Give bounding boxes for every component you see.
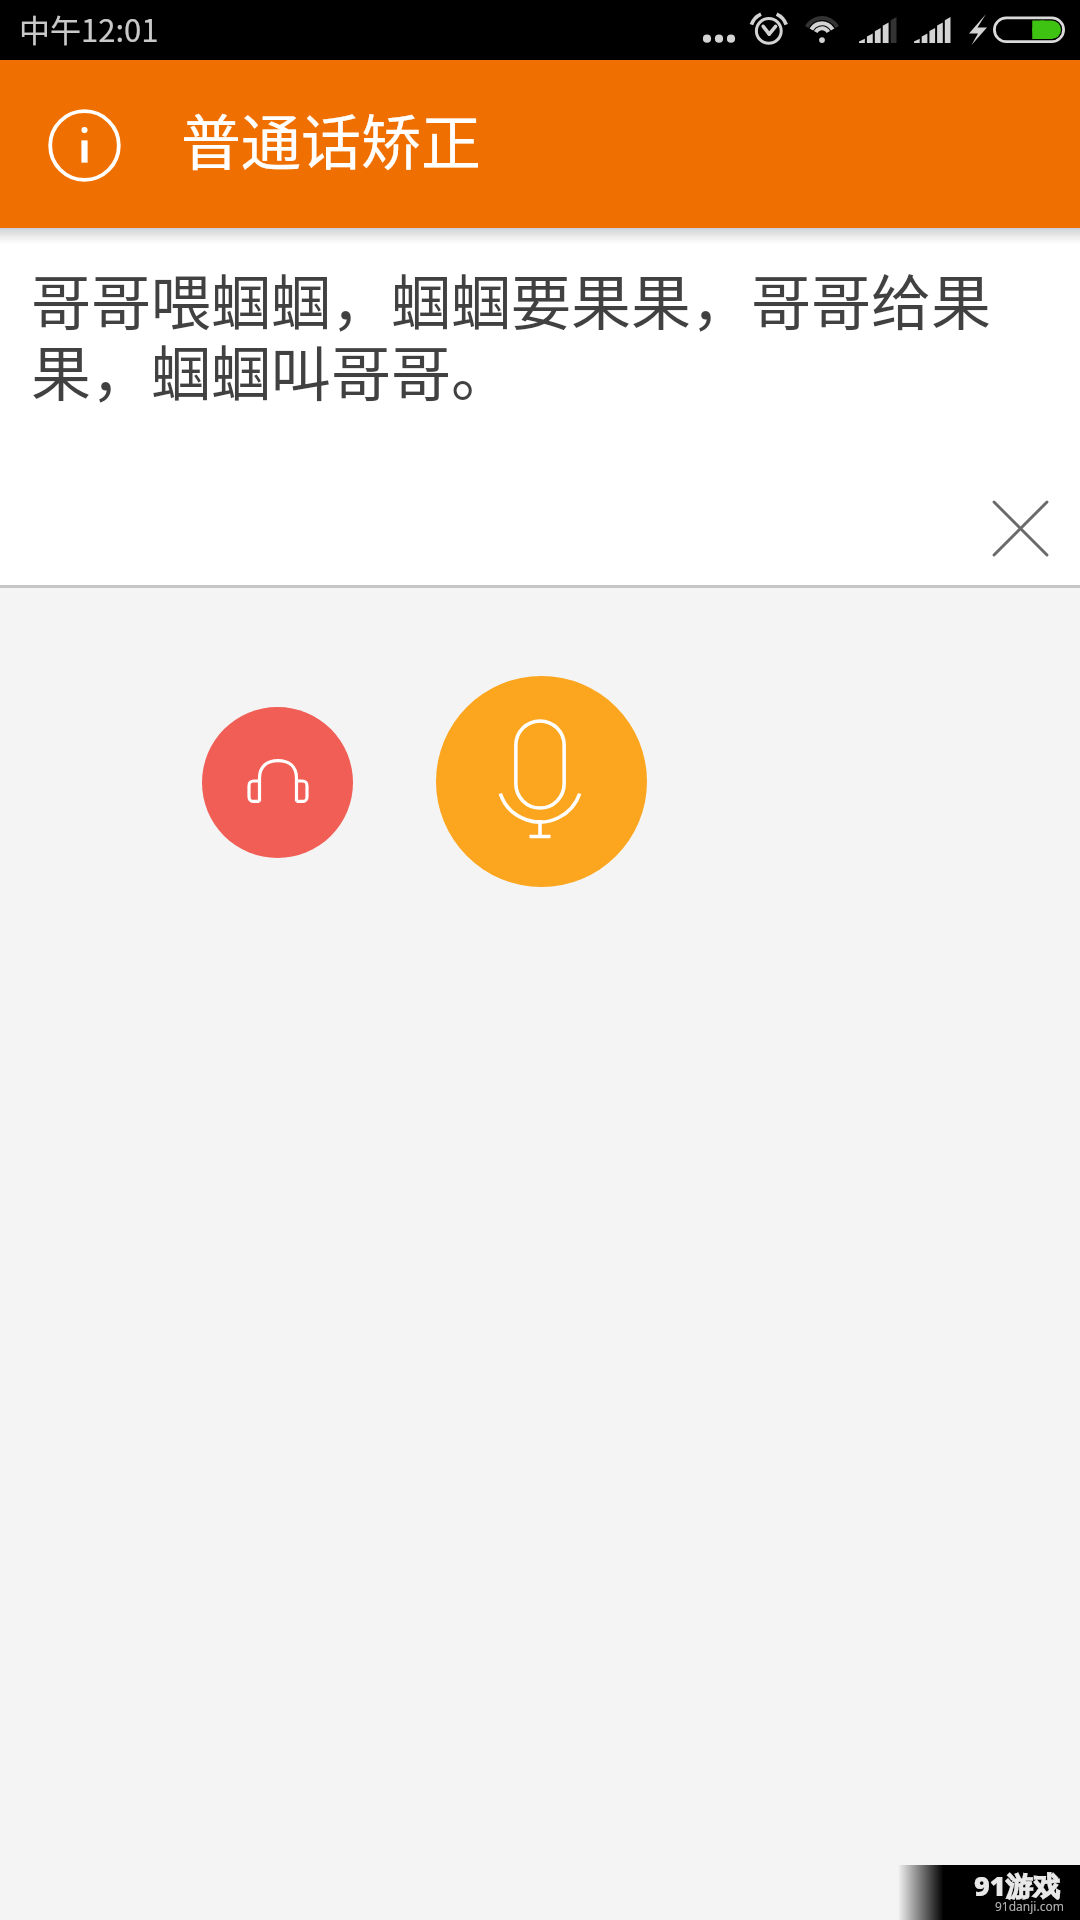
button[interactable]: Listen to sample: [202, 707, 353, 858]
button[interactable]: Record: [436, 676, 647, 887]
staticText: 91danji.com: [995, 1898, 1064, 1914]
staticText: 普通话矫正: [181, 95, 481, 182]
staticText: 中午12:01: [19, 6, 159, 51]
button[interactable]: Close: [976, 484, 1064, 572]
button[interactable]: Info: [48, 109, 121, 182]
staticText: 91游戏: [974, 1867, 1060, 1904]
staticText: 哥哥喂蝈蝈，蝈蝈要果果，哥哥给果果，蝈蝈叫哥哥。: [31, 255, 1048, 413]
